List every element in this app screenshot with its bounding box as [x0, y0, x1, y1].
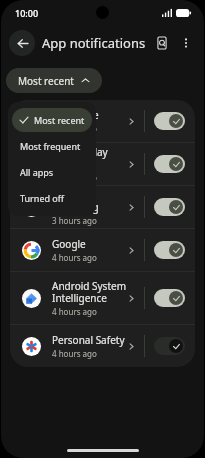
- staticText: 4 hours ago: [52, 348, 97, 359]
- button[interactable]: Android System Intelligence: [10, 272, 195, 324]
- button[interactable]: Most frequent: [12, 134, 92, 158]
- button[interactable]: Notifications on: [154, 112, 185, 130]
- staticText: App notifications: [42, 34, 146, 52]
- staticText: Personal Safety: [52, 333, 125, 347]
- button[interactable]: Most recent: [12, 108, 92, 132]
- staticText: Most recent: [18, 74, 74, 88]
- staticText: 10:00: [15, 7, 39, 19]
- button[interactable]: Notifications off: [154, 337, 185, 355]
- button[interactable]: Notifications on: [154, 198, 185, 216]
- button[interactable]: Search in page: [150, 31, 174, 55]
- button[interactable]: More options: [174, 31, 198, 55]
- staticText: Digital Wellbeing: [52, 188, 127, 214]
- button[interactable]: Notifications on: [154, 155, 185, 173]
- button[interactable]: Turned off: [12, 186, 92, 210]
- button[interactable]: Notifications on: [154, 241, 185, 259]
- staticText: All apps: [20, 166, 54, 178]
- button[interactable]: Back: [9, 30, 35, 56]
- staticText: 4 hours ago: [52, 306, 97, 317]
- button[interactable]: All apps: [12, 160, 92, 184]
- button[interactable]: Personal Safety: [10, 325, 195, 367]
- staticText: 4 hours ago: [52, 252, 97, 263]
- button[interactable]: Digital Wellbeing: [10, 186, 195, 228]
- staticText: 3 hours ago: [52, 172, 97, 183]
- staticText: Turned off: [20, 192, 64, 204]
- staticText: Google Play services: [52, 145, 127, 171]
- button[interactable]: Most recent: [6, 68, 102, 93]
- staticText: Most recent: [34, 114, 85, 126]
- staticText: 3 hours ago: [52, 215, 97, 226]
- button[interactable]: Google Play services: [10, 143, 195, 185]
- button[interactable]: Google: [10, 229, 195, 271]
- staticText: Android System Intelligence: [52, 279, 127, 305]
- button[interactable]: Play Store: [10, 100, 195, 142]
- staticText: Play Store: [52, 108, 99, 122]
- staticText: Most frequent: [20, 140, 81, 152]
- button[interactable]: Notifications on: [154, 289, 185, 307]
- staticText: Google: [52, 237, 86, 251]
- staticText: 3 hours ago: [52, 123, 97, 134]
